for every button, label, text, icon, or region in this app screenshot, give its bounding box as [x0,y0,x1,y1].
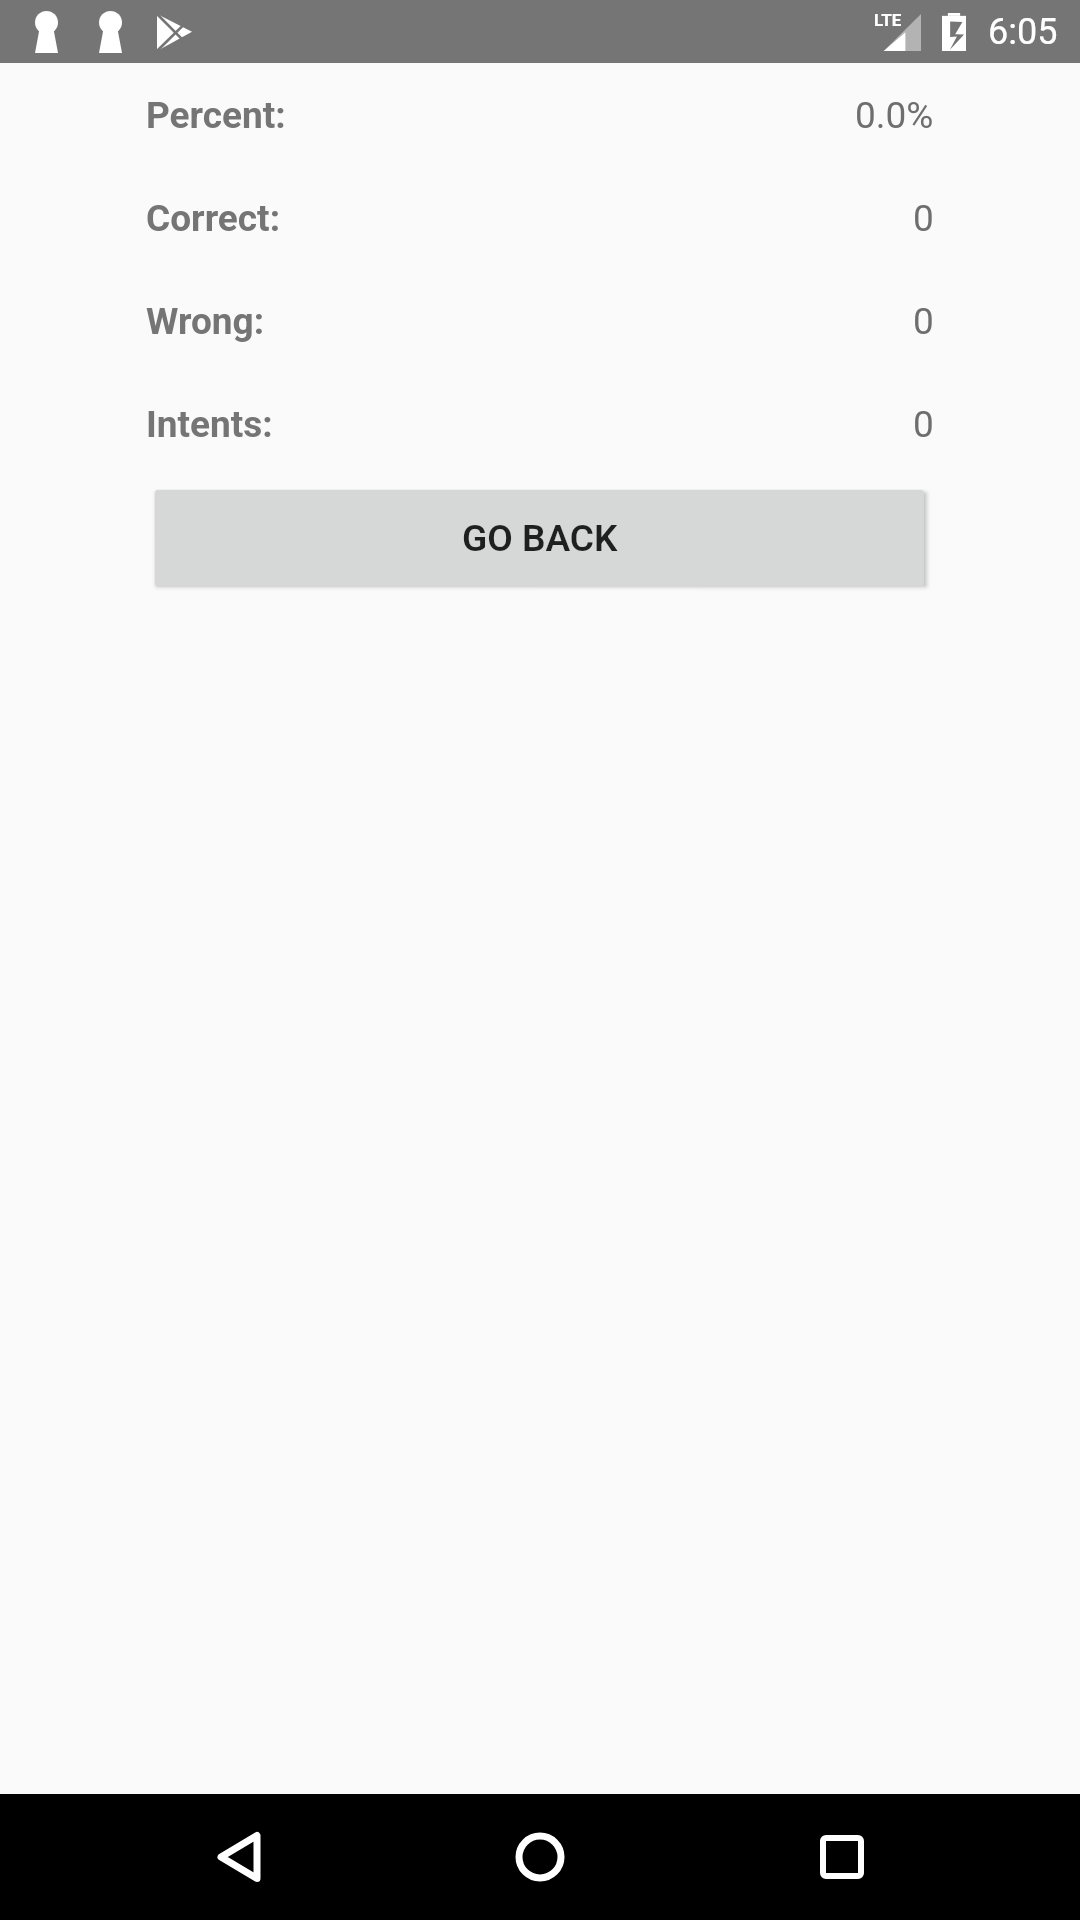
button[interactable]: Wrong: [0,270,1080,373]
staticText: 0 [913,197,934,240]
staticText: GO BACK [462,517,618,560]
staticText: Intents: [146,403,273,446]
button[interactable]: Back [176,1794,302,1920]
button[interactable]: Percent: [0,64,1080,167]
staticText: 0.0% [855,94,934,137]
staticText: 0 [913,300,934,343]
staticText: 6:05 [988,11,1058,53]
button[interactable]: GO BACK [155,490,924,586]
staticText: LTE [874,10,902,30]
staticText: Percent: [146,94,286,137]
staticText: Correct: [146,197,281,240]
button[interactable]: Correct: [0,167,1080,270]
staticText: Wrong: [146,300,265,343]
staticText: 0 [913,403,934,446]
button[interactable]: Intents: [0,373,1080,476]
button[interactable]: Home [477,1794,603,1920]
button[interactable]: Recents [779,1794,905,1920]
